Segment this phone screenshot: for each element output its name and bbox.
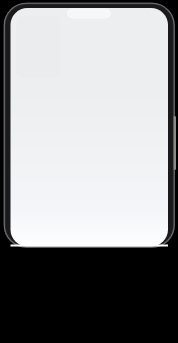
- button[interactable]: Phone device preview: [0, 0, 178, 343]
- button[interactable]: App screen: [0, 0, 158, 239]
